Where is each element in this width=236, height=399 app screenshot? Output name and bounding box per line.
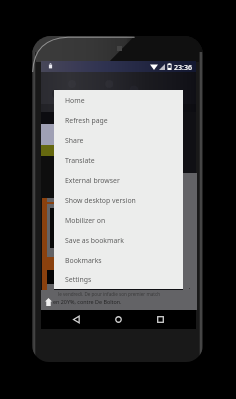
staticText: Bookmarks (65, 256, 102, 265)
staticText: Refresh page (65, 116, 108, 125)
staticText: Save as bookmark (65, 236, 124, 245)
button[interactable]: Recent apps (147, 310, 173, 329)
button[interactable]: Save as bookmark (54, 230, 183, 250)
button[interactable]: Refresh page (54, 110, 183, 130)
button[interactable]: Back (63, 310, 89, 329)
staticText: Home (65, 96, 85, 105)
staticText: Settings (65, 275, 92, 284)
button[interactable]: Home (54, 90, 183, 110)
button[interactable]: Bookmarks (54, 250, 183, 270)
staticText: 23:36 (174, 63, 192, 73)
staticText: Translate (65, 156, 95, 165)
staticText: Share (65, 136, 84, 145)
button[interactable]: Mobilizer on (54, 210, 183, 230)
button[interactable]: Translate (54, 150, 183, 170)
button[interactable]: Settings (54, 270, 183, 289)
staticText: en 20Y%, contre De Bolton. (53, 298, 122, 305)
button[interactable]: External browser (54, 170, 183, 190)
button[interactable]: Show desktop version (54, 190, 183, 210)
staticText: Show desktop version (65, 196, 136, 205)
staticText: External browser (65, 176, 120, 185)
button[interactable]: Share (54, 130, 183, 150)
staticText: Mobilizer on (65, 216, 106, 225)
staticText: le vendredi. De pour infadie son premier… (58, 291, 161, 297)
button[interactable]: Home (105, 310, 131, 329)
